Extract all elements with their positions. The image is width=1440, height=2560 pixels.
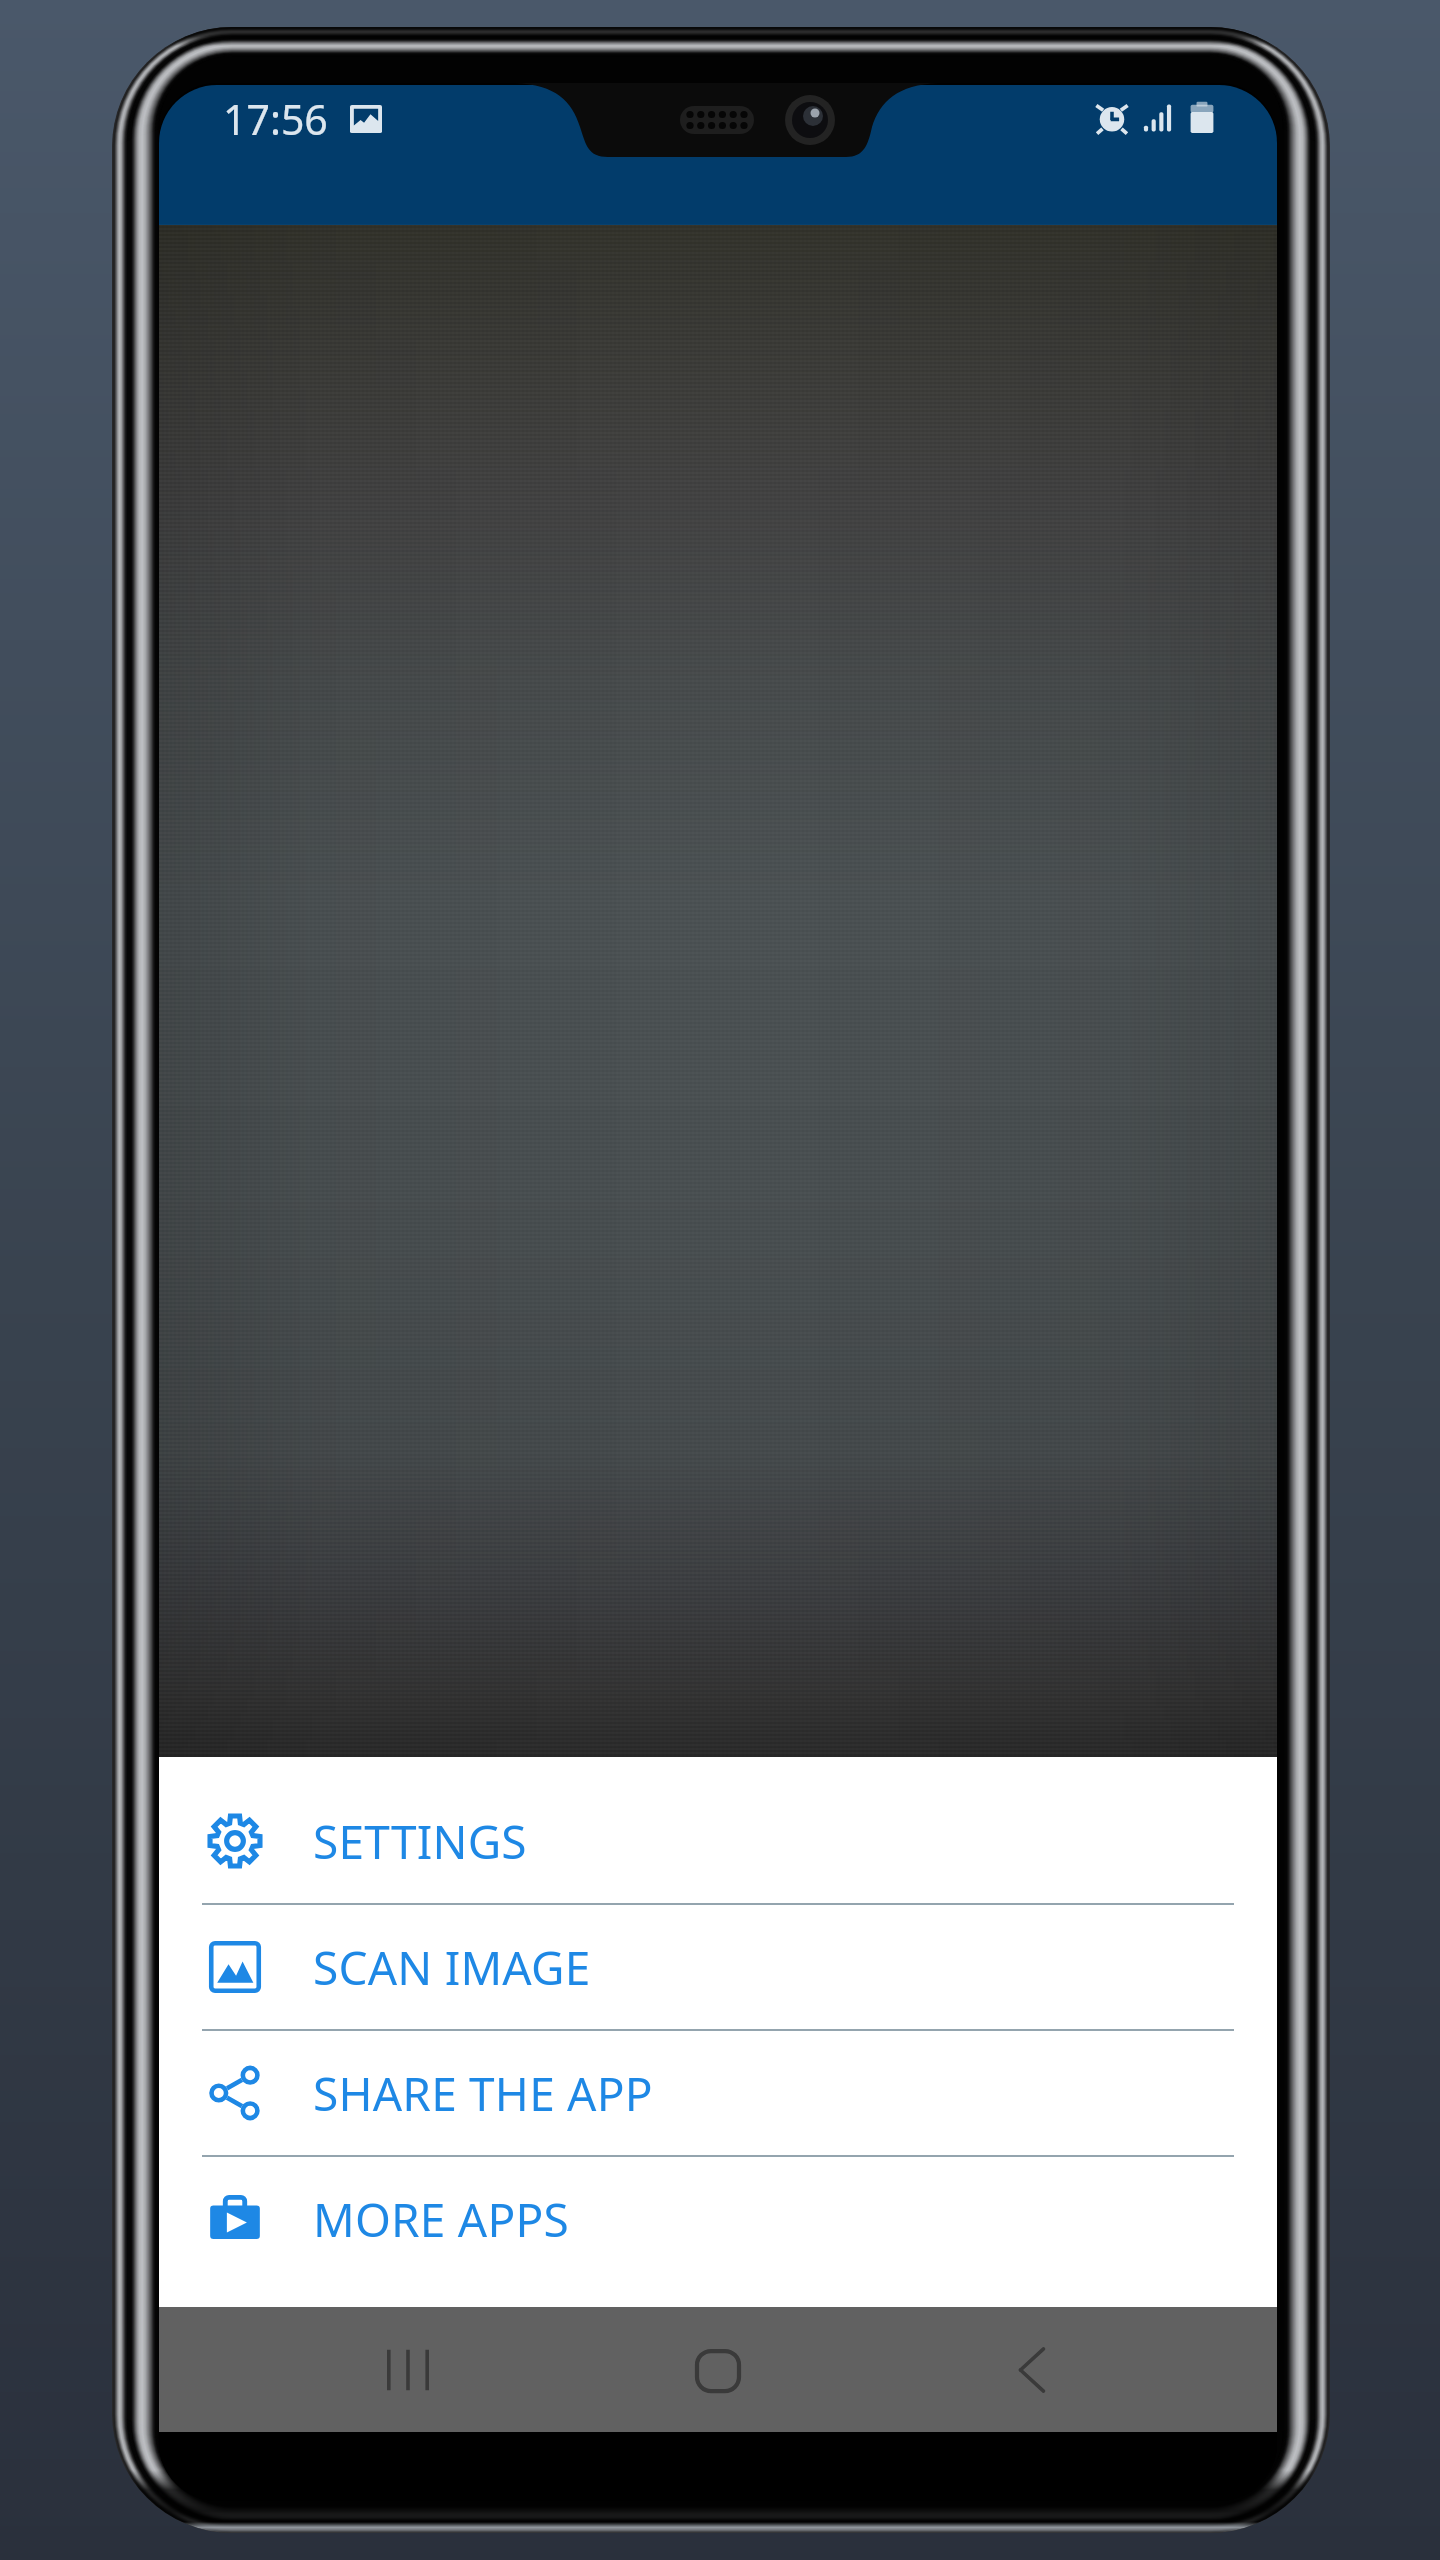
button[interactable]: Back <box>962 2307 1102 2432</box>
staticText: SHARE THE APP <box>313 2062 653 2125</box>
staticText: 17:56 <box>223 91 328 147</box>
button[interactable]: Home <box>648 2307 788 2432</box>
button[interactable]: Recent apps <box>338 2307 478 2432</box>
staticText: SCAN IMAGE <box>313 1936 591 1999</box>
staticText: MORE APPS <box>313 2188 569 2251</box>
button[interactable]: SHARE THE APP <box>159 2031 1277 2155</box>
staticText: SETTINGS <box>313 1810 527 1873</box>
button[interactable]: SETTINGS <box>159 1779 1277 1903</box>
button[interactable]: SCAN IMAGE <box>159 1905 1277 2029</box>
button[interactable]: MORE APPS <box>159 2157 1277 2281</box>
